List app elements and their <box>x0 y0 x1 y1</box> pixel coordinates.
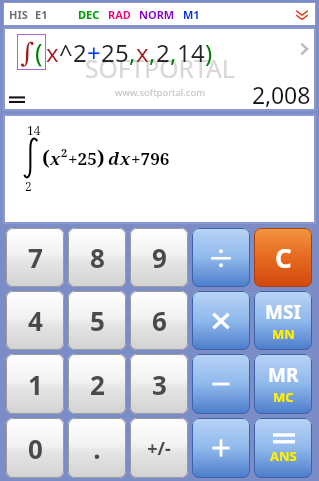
staticText: 2 <box>61 145 68 160</box>
button[interactable]: MSI MN <box>254 291 312 350</box>
staticText: www.softportal.com <box>115 86 206 99</box>
staticText: +/- <box>147 436 171 461</box>
staticText: , <box>129 36 136 69</box>
button[interactable]: 5 <box>68 291 126 350</box>
staticText: 7 <box>28 240 43 275</box>
staticText: + <box>87 36 101 69</box>
button[interactable]: Equals ANS <box>254 418 312 478</box>
button[interactable]: 4 <box>6 291 64 350</box>
button[interactable]: operator <box>192 228 250 287</box>
staticText: ) <box>205 36 213 69</box>
staticText: x <box>120 147 131 170</box>
staticText: ^ <box>59 36 73 69</box>
button[interactable]: 8 <box>68 228 126 287</box>
staticText: 5 <box>90 303 105 338</box>
button[interactable]: operator <box>192 354 250 414</box>
button[interactable]: operator <box>192 291 250 350</box>
staticText: 4 <box>28 303 43 338</box>
button[interactable]: C <box>254 228 312 287</box>
staticText: . <box>93 431 101 466</box>
staticText: DEC <box>78 7 100 22</box>
button[interactable]: 1 <box>6 354 64 414</box>
staticText: x <box>136 36 149 69</box>
staticText: 2 <box>156 36 170 69</box>
staticText: d <box>108 147 120 170</box>
button[interactable]: MR MC <box>254 354 312 414</box>
staticText: ) <box>97 145 105 171</box>
staticText: 4 <box>191 36 205 69</box>
button[interactable]: Expand <box>293 5 311 23</box>
staticText: 1 <box>177 36 191 69</box>
staticText: MR <box>268 362 299 388</box>
staticText: SOFTPORTAL <box>85 52 235 86</box>
staticText: +796 <box>131 147 170 170</box>
staticText: 2‚008 <box>252 79 311 110</box>
staticText: 2 <box>90 367 105 402</box>
staticText: , <box>170 36 177 69</box>
staticText: 2 <box>101 36 115 69</box>
staticText: 6 <box>152 303 167 338</box>
staticText: 3 <box>152 367 167 402</box>
button[interactable]: +/- <box>130 418 188 478</box>
staticText: M1 <box>183 7 200 22</box>
staticText: ( <box>42 145 50 171</box>
staticText: x <box>50 147 61 170</box>
staticText: NORM <box>139 7 175 22</box>
staticText: RAD <box>108 7 131 22</box>
staticText: ANS <box>270 447 297 465</box>
staticText: MC <box>273 388 294 406</box>
staticText: HIS <box>9 7 28 22</box>
button[interactable]: Next <box>296 41 312 57</box>
button[interactable]: operator <box>192 418 250 478</box>
staticText: 1 <box>28 367 43 402</box>
staticText: C <box>275 240 292 275</box>
staticText: , <box>149 36 156 69</box>
staticText: ( <box>35 35 43 69</box>
button[interactable]: 2 <box>68 354 126 414</box>
button[interactable]: 7 <box>6 228 64 287</box>
button[interactable]: 3 <box>130 354 188 414</box>
staticText: ∫ <box>20 37 35 68</box>
staticText: 0 <box>28 431 43 466</box>
staticText: E1 <box>35 7 48 22</box>
staticText: MSI <box>265 299 301 325</box>
staticText: 14 <box>27 122 41 138</box>
staticText: 2 <box>73 36 87 69</box>
button[interactable]: 0 <box>6 418 64 478</box>
button[interactable]: . <box>68 418 126 478</box>
staticText: 2 <box>25 178 32 194</box>
staticText: x <box>46 36 59 69</box>
staticText: +25 <box>68 147 97 170</box>
button[interactable]: 9 <box>130 228 188 287</box>
staticText: 8 <box>90 240 105 275</box>
staticText: 5 <box>115 36 129 69</box>
staticText: 9 <box>152 240 167 275</box>
button[interactable]: 6 <box>130 291 188 350</box>
staticText: MN <box>272 325 295 343</box>
